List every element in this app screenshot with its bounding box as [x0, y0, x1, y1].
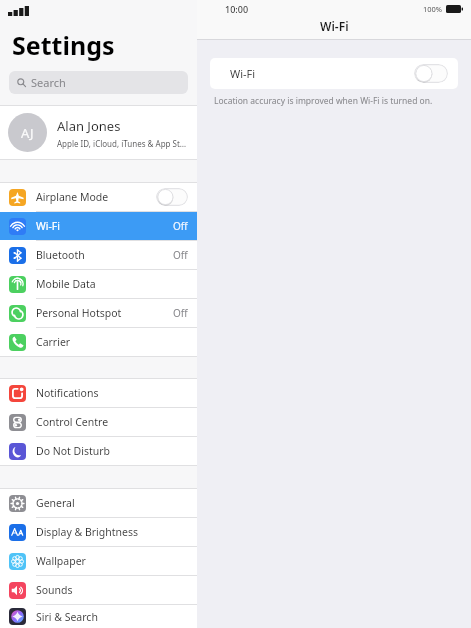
- staticText: Location accuracy is improved when Wi-Fi…: [214, 95, 433, 107]
- button[interactable]: Carrier: [0, 328, 197, 356]
- staticText: Wi-Fi: [36, 219, 173, 233]
- staticText: AJ: [21, 124, 34, 142]
- staticText: Sounds: [36, 583, 188, 597]
- staticText: Notifications: [36, 386, 188, 400]
- button[interactable]: Toggle: [414, 64, 448, 83]
- button[interactable]: Toggle: [156, 188, 188, 206]
- staticText: Do Not Disturb: [36, 444, 188, 458]
- button[interactable]: Bluetooth: [0, 241, 197, 269]
- button[interactable]: General: [0, 489, 197, 517]
- staticText: 10:00: [225, 3, 249, 15]
- staticText: Wi-Fi: [230, 66, 256, 81]
- staticText: Wallpaper: [36, 554, 188, 568]
- button[interactable]: Display & Brightness: [0, 518, 197, 546]
- staticText: General: [36, 496, 188, 510]
- staticText: Mobile Data: [36, 277, 188, 291]
- button[interactable]: Do Not Disturb: [0, 437, 197, 465]
- staticText: Airplane Mode: [36, 190, 156, 204]
- button[interactable]: Airplane Mode: [0, 183, 197, 211]
- staticText: Personal Hotspot: [36, 306, 173, 320]
- staticText: Control Centre: [36, 415, 188, 429]
- button[interactable]: Mobile Data: [0, 270, 197, 298]
- button[interactable]: Siri & Search: [0, 605, 197, 628]
- button[interactable]: Wi-Fi: [210, 58, 458, 89]
- button[interactable]: Search: [9, 71, 188, 94]
- staticText: Off: [173, 219, 188, 233]
- staticText: Display & Brightness: [36, 525, 188, 539]
- button[interactable]: Control Centre: [0, 408, 197, 436]
- staticText: Search: [31, 75, 66, 90]
- button[interactable]: Personal Hotspot: [0, 299, 197, 327]
- staticText: Off: [173, 306, 188, 320]
- staticText: Bluetooth: [36, 248, 173, 262]
- button[interactable]: AJ: [0, 106, 197, 159]
- staticText: Alan Jones: [57, 117, 121, 135]
- staticText: Off: [173, 248, 188, 262]
- staticText: Settings: [12, 28, 115, 62]
- button[interactable]: Wi-Fi: [0, 212, 197, 240]
- staticText: Carrier: [36, 335, 188, 349]
- button[interactable]: Sounds: [0, 576, 197, 604]
- staticText: Wi-Fi: [320, 18, 349, 34]
- staticText: 100%: [423, 4, 443, 14]
- staticText: Siri & Search: [36, 610, 188, 624]
- button[interactable]: Wallpaper: [0, 547, 197, 575]
- staticText: Apple ID, iCloud, iTunes & App St…: [57, 138, 187, 149]
- button[interactable]: Notifications: [0, 379, 197, 407]
